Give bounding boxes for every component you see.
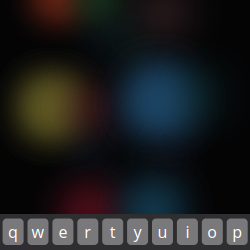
staticText: p <box>232 221 242 242</box>
button[interactable]: q <box>3 218 24 245</box>
button[interactable]: t <box>102 218 123 245</box>
button[interactable]: e <box>52 218 73 245</box>
staticText: y <box>134 221 142 242</box>
staticText: i <box>185 221 189 242</box>
button[interactable]: w <box>27 218 48 245</box>
staticText: o <box>207 221 217 242</box>
staticText: r <box>84 221 91 242</box>
staticText: q <box>8 221 18 242</box>
staticText: t <box>110 221 116 242</box>
button[interactable]: u <box>152 218 173 245</box>
staticText: w <box>31 221 44 242</box>
button[interactable]: r <box>77 218 98 245</box>
staticText: u <box>157 221 167 242</box>
button[interactable]: o <box>202 218 223 245</box>
button[interactable]: p <box>227 218 248 245</box>
staticText: e <box>58 221 67 242</box>
button[interactable]: i <box>177 218 198 245</box>
button[interactable]: y <box>127 218 148 245</box>
